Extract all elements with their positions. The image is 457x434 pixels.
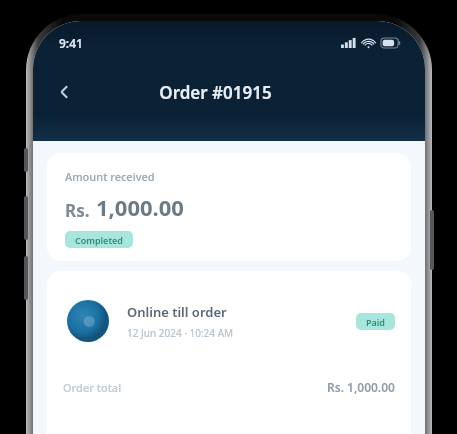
staticText: Online till order (127, 303, 227, 321)
staticText: Rs. (65, 199, 90, 222)
staticText: Order #01915 (159, 81, 272, 104)
staticText: Rs. 1,000.00 (327, 379, 395, 395)
button[interactable]: Paid (356, 313, 395, 330)
staticText: 1,000.00 (96, 192, 184, 222)
button[interactable]: Back (45, 72, 85, 112)
staticText: 9:41 (59, 35, 83, 51)
staticText: Order total (63, 380, 122, 395)
staticText: 12 Jun 2024 · 10:24 AM (127, 326, 234, 340)
staticText: Paid (366, 316, 385, 328)
button[interactable]: Amount received (47, 153, 411, 261)
staticText: Amount received (65, 169, 155, 184)
staticText: Completed (75, 234, 123, 246)
button[interactable]: Online till order (47, 285, 411, 357)
